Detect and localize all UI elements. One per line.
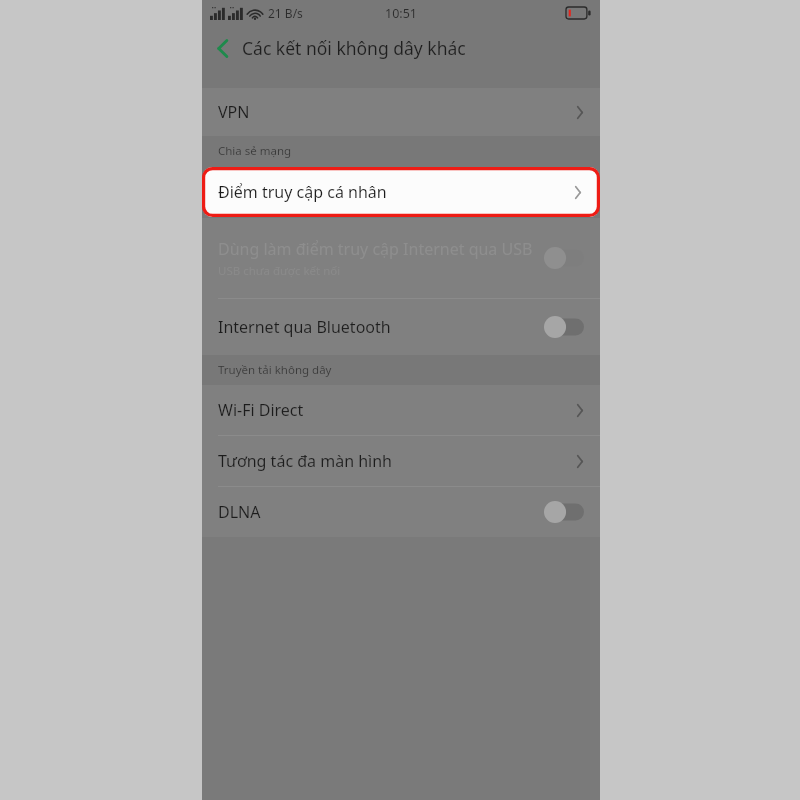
button[interactable]: Điểm truy cập cá nhân [203,167,599,217]
staticText: Dùng làm điểm truy cập Internet qua USB [218,238,533,260]
staticText: Chia sẻ mạng [218,143,292,159]
staticText: Wi-Fi Direct [218,399,576,421]
staticText: DLNA [218,501,544,523]
button[interactable]: Wi-Fi Direct [202,385,600,435]
staticText: Điểm truy cập cá nhân [218,181,574,203]
staticText: Truyền tải không dây [218,362,332,378]
button[interactable]: Tương tác đa màn hình [202,436,600,486]
button[interactable]: DLNA [202,487,600,537]
staticText: VPN [218,101,576,123]
button[interactable]: VPN [202,88,600,136]
button[interactable]: Back [202,28,242,68]
staticText: Internet qua Bluetooth [218,316,544,338]
button[interactable]: Internet qua Bluetooth [202,299,600,355]
staticText: 10:51 [385,5,417,22]
staticText: Tương tác đa màn hình [218,450,576,472]
staticText: 21 B/s [268,5,303,21]
staticText: Các kết nối không dây khác [242,36,466,60]
